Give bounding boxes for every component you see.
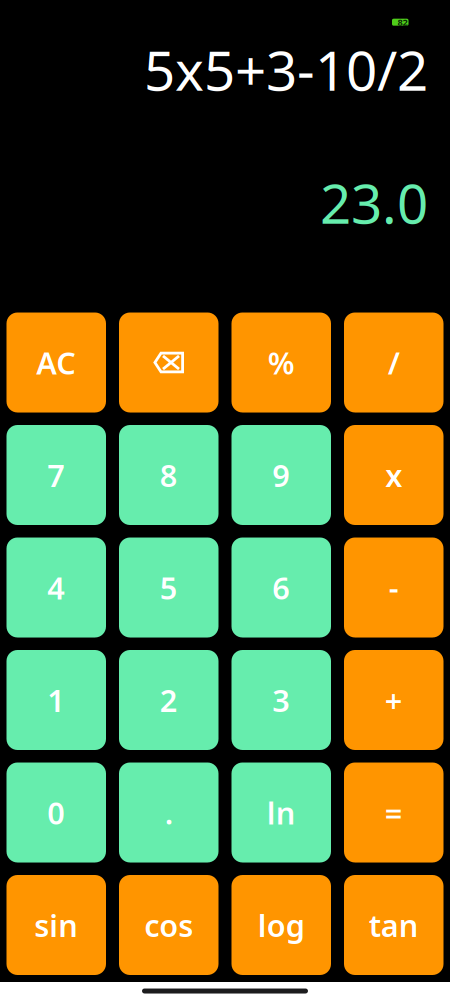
button[interactable]: = [344,762,443,862]
staticText: / [388,342,400,383]
staticText: % [268,342,295,383]
staticText: 7 [47,455,65,495]
staticText: 5x5+3-10/2 [144,33,428,106]
button[interactable]: 2 [119,650,218,750]
staticText: 3 [272,680,290,720]
button[interactable]: + [344,650,443,750]
staticText: 6 [272,567,290,608]
staticText: 0 [47,792,65,833]
staticText: 2 [160,680,178,720]
button[interactable]: 8 [119,425,218,525]
button[interactable]: 3 [231,650,331,750]
button[interactable]: 4 [6,537,106,637]
staticText: AC [36,342,76,383]
staticText: 9 [272,455,290,495]
button[interactable]: . [119,762,218,862]
button[interactable]: 5 [119,537,218,637]
staticText: log [258,905,305,945]
button[interactable]: 6 [231,537,331,637]
button[interactable]: AC [6,312,106,412]
staticText: x [385,455,402,495]
button[interactable]: tan [344,875,443,975]
button[interactable]: ln [231,762,331,862]
button[interactable]: Delete [119,312,218,412]
staticText: + [385,680,403,720]
staticText: 5 [160,567,178,608]
button[interactable]: x [344,425,443,525]
staticText: . [165,792,173,833]
button[interactable]: 0 [6,762,106,862]
staticText: tan [369,905,419,945]
staticText: 23.0 [320,166,428,239]
staticText: = [385,792,403,833]
staticText: ln [267,792,296,833]
staticText: 1 [47,680,65,720]
button[interactable]: 9 [231,425,331,525]
button[interactable]: cos [119,875,218,975]
staticText: 8 [160,455,178,495]
staticText: 4 [47,567,65,608]
button[interactable]: 1 [6,650,106,750]
button[interactable]: sin [6,875,106,975]
button[interactable]: log [231,875,331,975]
staticText: 82 [397,16,407,28]
staticText: cos [144,905,193,945]
staticText: - [389,567,399,608]
staticText: sin [34,905,78,945]
button[interactable]: 7 [6,425,106,525]
button[interactable]: / [344,312,443,412]
button[interactable]: - [344,537,443,637]
button[interactable]: % [231,312,331,412]
